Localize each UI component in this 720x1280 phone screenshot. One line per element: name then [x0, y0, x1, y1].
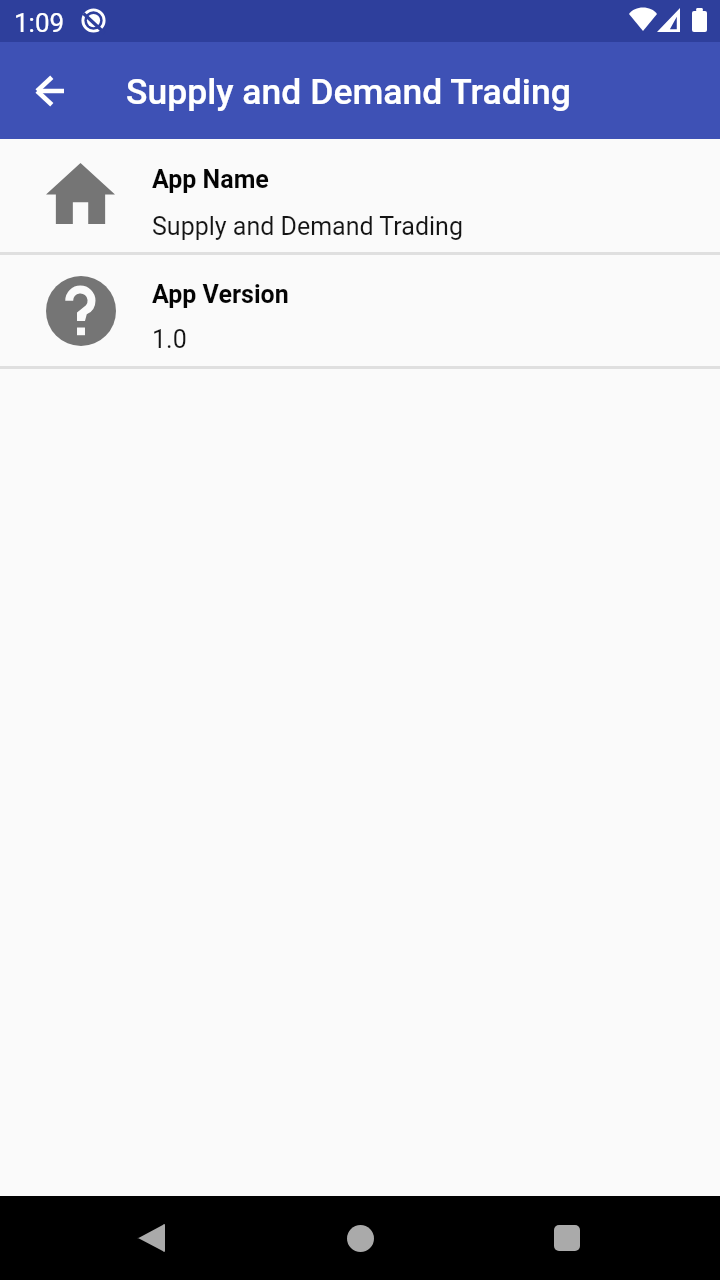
button[interactable]: Back [130, 1218, 170, 1258]
button[interactable]: Recent apps [546, 1217, 588, 1259]
staticText: App Name [152, 165, 269, 194]
staticText: Supply and Demand Trading [152, 212, 463, 241]
button[interactable]: App Name [0, 139, 720, 252]
staticText: 1.0 [152, 325, 187, 354]
button[interactable]: Home [339, 1217, 381, 1259]
staticText: App Version [152, 280, 289, 309]
staticText: 1:09 [14, 8, 65, 38]
button[interactable]: App Version [0, 255, 720, 366]
staticText: Supply and Demand Trading [126, 71, 571, 113]
button[interactable]: Navigate up [20, 62, 78, 120]
